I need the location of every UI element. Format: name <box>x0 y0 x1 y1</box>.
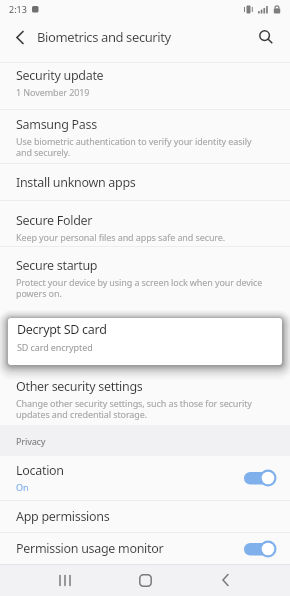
staticText: Biometrics and security <box>37 28 171 46</box>
button[interactable]: Location <box>0 456 290 500</box>
button[interactable]: App permissions <box>0 501 290 532</box>
button[interactable] <box>33 564 97 596</box>
staticText: App permissions <box>16 508 110 525</box>
button[interactable]: Samsung Pass <box>0 110 290 163</box>
button[interactable]: Install unknown apps <box>0 164 290 200</box>
button[interactable]: Secure startup <box>0 247 290 311</box>
button[interactable]: Other security settings <box>0 376 290 425</box>
staticText: Secure Folder <box>16 212 93 229</box>
button[interactable] <box>113 564 177 596</box>
staticText: Security update <box>16 67 104 84</box>
staticText: Privacy <box>16 435 46 447</box>
staticText: Location <box>16 462 64 479</box>
button[interactable]: Security update <box>0 63 290 109</box>
button[interactable] <box>255 26 277 48</box>
staticText: Keep your personal files and apps safe a… <box>16 231 226 243</box>
staticText: 2:13 <box>9 3 27 15</box>
staticText: Samsung Pass <box>16 116 97 133</box>
staticText: Change other security settings, such as … <box>16 397 252 420</box>
staticText: Use biometric authentication to verify y… <box>16 135 252 158</box>
staticText: Other security settings <box>16 378 143 395</box>
staticText: Permission usage monitor <box>16 540 164 557</box>
button[interactable]: Secure Folder <box>0 201 290 246</box>
button[interactable]: Permission usage monitor <box>0 533 290 564</box>
staticText: Install unknown apps <box>16 174 136 191</box>
button[interactable]: Decrypt SD card <box>8 318 282 365</box>
staticText: 1 November 2019 <box>16 86 90 98</box>
button[interactable] <box>10 27 30 47</box>
staticText: Protect your device by using a screen lo… <box>16 276 263 299</box>
staticText: SD card encrypted <box>17 341 93 353</box>
staticText: Secure startup <box>16 257 98 274</box>
staticText: Decrypt SD card <box>17 321 107 338</box>
button[interactable] <box>193 564 257 596</box>
staticText: On <box>16 481 29 493</box>
